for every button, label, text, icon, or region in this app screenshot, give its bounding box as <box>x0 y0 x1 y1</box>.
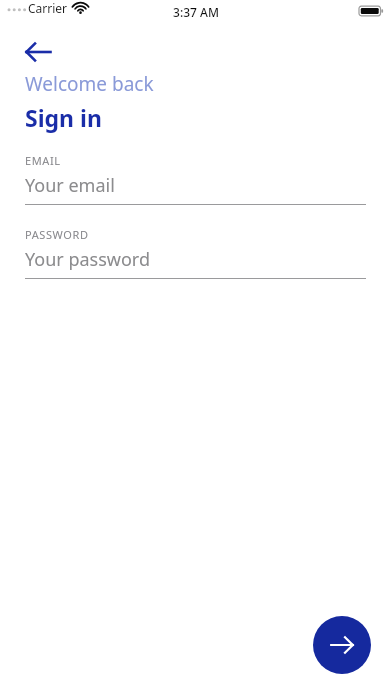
staticText: Your password <box>25 247 151 272</box>
staticText: Sign in <box>25 102 102 133</box>
staticText: PASSWORD <box>25 227 89 242</box>
button[interactable]: Continue <box>313 616 371 674</box>
button[interactable]: Back <box>14 36 62 68</box>
button[interactable]: EMAIL <box>25 153 366 205</box>
staticText: Welcome back <box>25 71 154 97</box>
staticText: 3:37 AM <box>0 4 392 20</box>
button[interactable]: PASSWORD <box>25 227 366 279</box>
staticText: Your email <box>25 173 115 198</box>
staticText: Carrier <box>28 0 68 16</box>
staticText: EMAIL <box>25 153 61 168</box>
